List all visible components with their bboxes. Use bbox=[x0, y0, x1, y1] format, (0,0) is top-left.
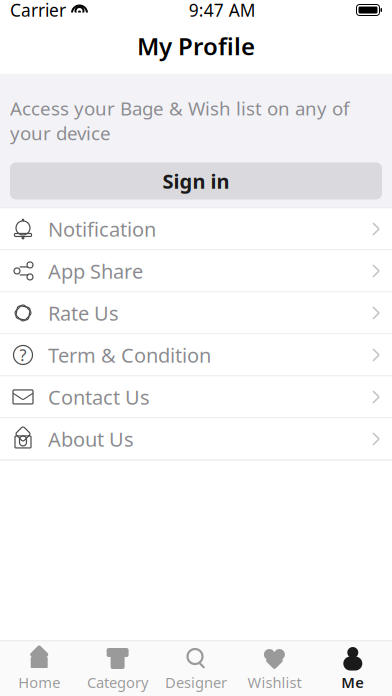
button[interactable]: Notification bbox=[0, 208, 392, 250]
staticText: Rate Us bbox=[48, 300, 119, 326]
staticText: About Us bbox=[48, 426, 134, 452]
staticText: Designer bbox=[165, 672, 227, 692]
staticText: Sign in bbox=[162, 168, 229, 194]
button[interactable]: Rate Us bbox=[0, 292, 392, 334]
staticText: Carrier bbox=[10, 0, 66, 21]
staticText: Term & Condition bbox=[48, 342, 211, 368]
staticText: Home bbox=[18, 672, 60, 692]
button[interactable]: ? bbox=[0, 334, 392, 376]
button[interactable]: Sign in bbox=[10, 162, 382, 199]
button[interactable]: Category bbox=[78, 641, 157, 696]
button[interactable]: App Share bbox=[0, 250, 392, 292]
staticText: Wishlist bbox=[247, 672, 301, 692]
button[interactable]: Wishlist bbox=[235, 641, 314, 696]
button[interactable]: Contact Us bbox=[0, 376, 392, 418]
button[interactable]: Designer bbox=[157, 641, 235, 696]
staticText: Notification bbox=[48, 216, 156, 242]
button[interactable]: Me bbox=[314, 641, 392, 696]
staticText: Category bbox=[87, 672, 148, 692]
button[interactable]: Home bbox=[0, 641, 78, 696]
staticText: Me bbox=[341, 672, 364, 692]
staticText: ? bbox=[19, 344, 26, 365]
staticText: 9:47 AM bbox=[189, 0, 256, 21]
staticText: My Profile bbox=[137, 30, 255, 62]
button[interactable]: About Us bbox=[0, 418, 392, 460]
staticText: App Share bbox=[48, 258, 143, 284]
staticText: Access your Bage & Wish list on any of y… bbox=[10, 96, 349, 145]
staticText: Contact Us bbox=[48, 384, 150, 410]
